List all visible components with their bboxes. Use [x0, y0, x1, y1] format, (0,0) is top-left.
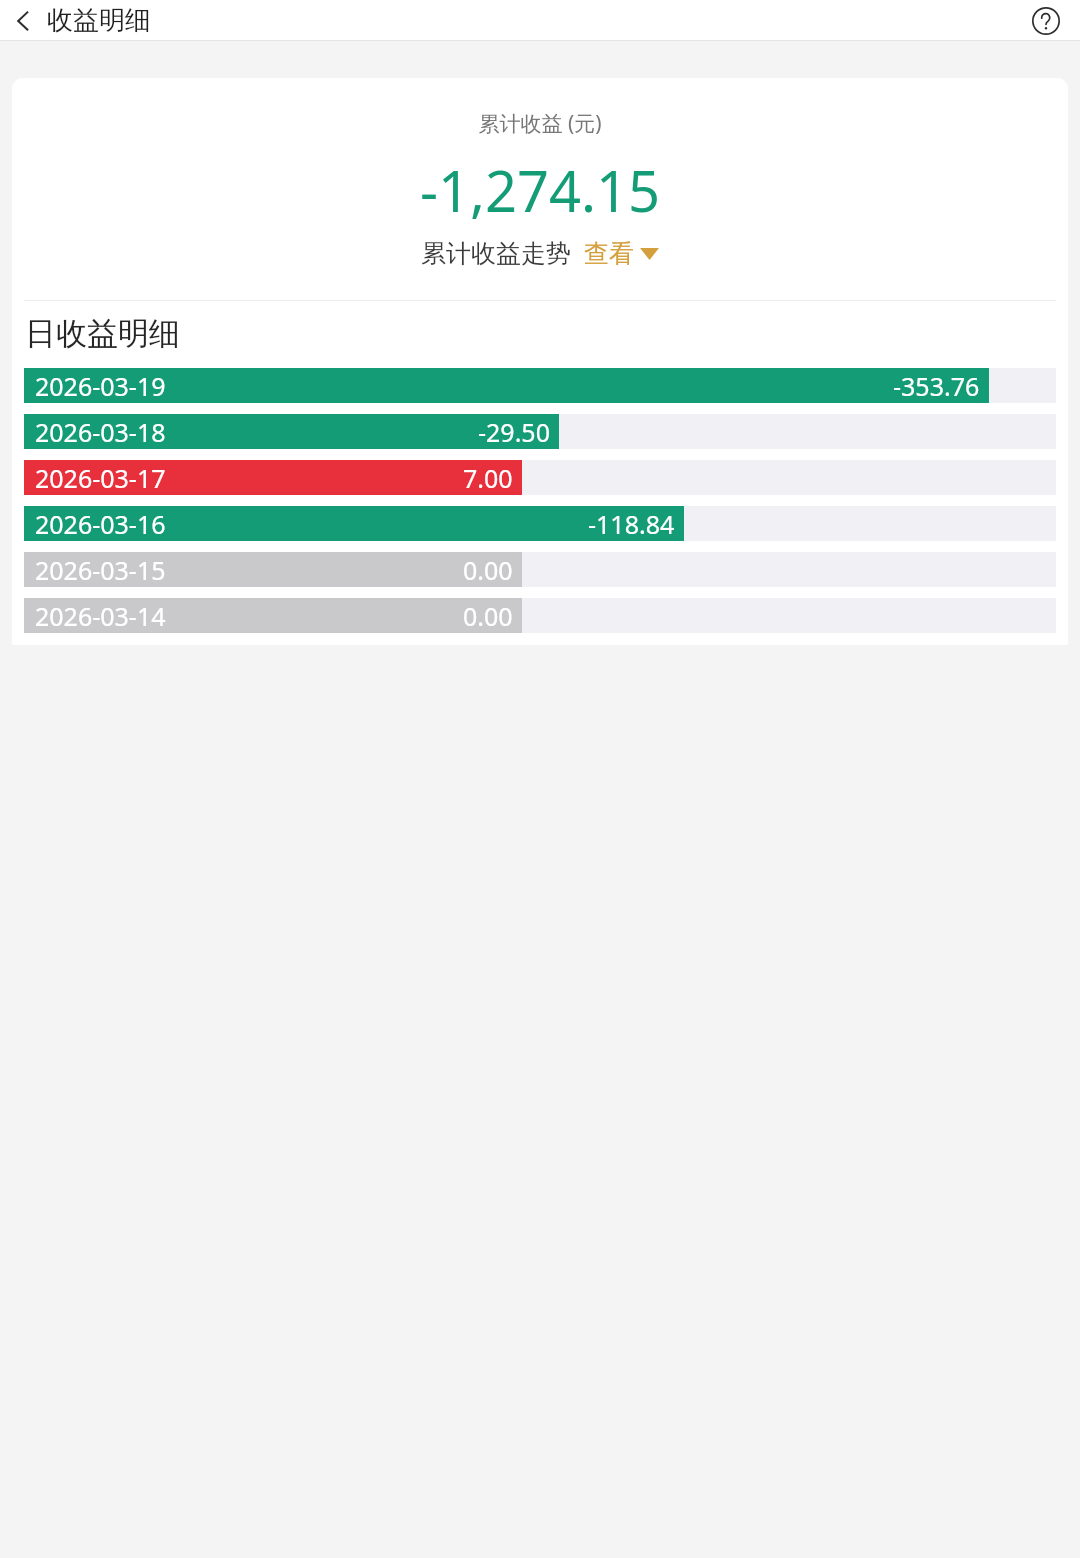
button[interactable]: 2026-03-14 — [24, 598, 1056, 633]
button[interactable]: 2026-03-19 — [24, 368, 1056, 403]
button[interactable]: 2026-03-17 — [24, 460, 1056, 495]
button[interactable]: Help — [1025, 0, 1067, 41]
staticText: 收益明细 — [47, 4, 151, 37]
staticText: 累计收益走势 — [421, 238, 571, 269]
staticText: 0.00 — [463, 553, 513, 587]
button[interactable]: 查看 — [584, 238, 659, 269]
staticText: 2026-03-14 — [35, 599, 166, 633]
button[interactable]: 2026-03-16 — [24, 506, 1056, 541]
staticText: 2026-03-16 — [35, 507, 166, 541]
staticText: -1,274.15 — [12, 152, 1068, 228]
staticText: -118.84 — [588, 507, 675, 541]
button[interactable]: 2026-03-15 — [24, 552, 1056, 587]
staticText: 日收益明细 — [25, 314, 180, 353]
staticText: 累计收益 (元) — [12, 109, 1068, 138]
staticText: 2026-03-17 — [35, 461, 166, 495]
staticText: -353.76 — [893, 369, 980, 403]
staticText: 查看 — [584, 238, 634, 269]
button[interactable]: 2026-03-18 — [24, 414, 1056, 449]
staticText: 2026-03-18 — [35, 415, 166, 449]
staticText: -29.50 — [478, 415, 550, 449]
staticText: 7.00 — [463, 461, 513, 495]
staticText: 2026-03-19 — [35, 369, 166, 403]
button[interactable]: Back — [4, 2, 42, 40]
staticText: 2026-03-15 — [35, 553, 166, 587]
staticText: 0.00 — [463, 599, 513, 633]
